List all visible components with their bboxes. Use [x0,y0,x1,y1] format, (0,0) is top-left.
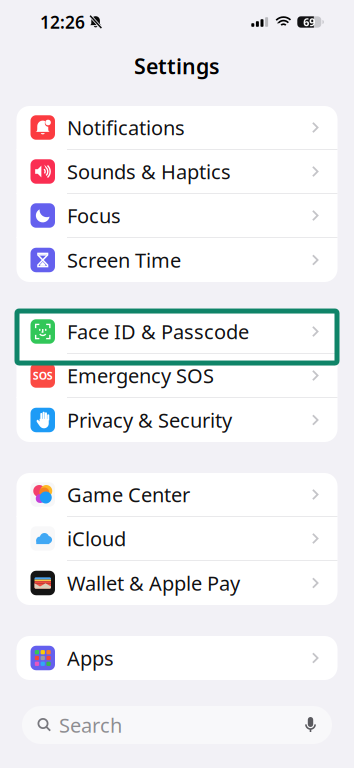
button[interactable]: Apps [16,636,337,680]
button[interactable]: Sounds & Haptics [16,150,337,194]
button[interactable]: Game Center [16,473,337,517]
button[interactable]: Focus [16,194,337,238]
staticText: Privacy & Security [67,407,232,433]
staticText: SOS [33,368,53,383]
staticText: Search [59,712,122,738]
staticText: 12:26 [40,10,85,33]
staticText: Sounds & Haptics [67,158,231,185]
staticText: Wallet & Apple Pay [67,570,240,596]
staticText: iCloud [67,525,126,552]
button[interactable]: SOS [16,354,337,398]
button[interactable]: Face ID & Passcode [16,310,337,354]
staticText: Screen Time [67,247,181,273]
staticText: Game Center [67,481,190,508]
staticText: 69 [303,15,315,29]
staticText: Emergency SOS [67,362,214,389]
staticText: Apps [67,645,114,671]
button[interactable]: Search [22,706,332,744]
staticText: Notifications [67,114,185,141]
button[interactable]: Screen Time [16,238,337,282]
staticText: Face ID & Passcode [67,318,249,345]
staticText: Settings [134,52,220,80]
staticText: Focus [67,202,121,229]
button[interactable]: iCloud [16,517,337,561]
button[interactable]: Notifications [16,106,337,150]
button[interactable]: Wallet & Apple Pay [16,561,337,605]
button[interactable]: Privacy & Security [16,398,337,442]
